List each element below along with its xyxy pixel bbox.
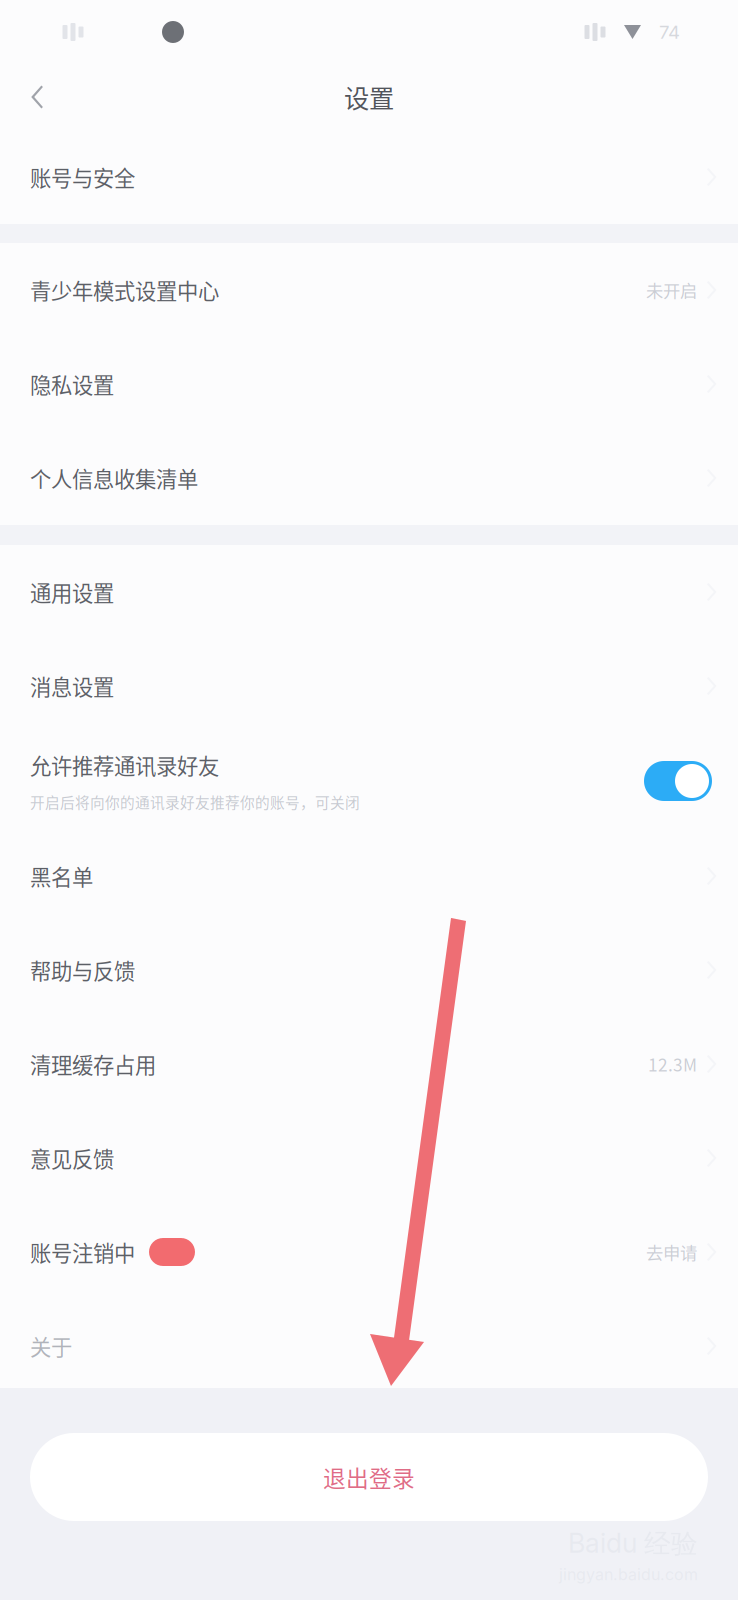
button[interactable]: 退出登录: [30, 1433, 708, 1521]
button[interactable]: Back: [0, 64, 96, 130]
button[interactable]: 青少年模式设置中心: [0, 243, 738, 337]
staticText: 账号注销中: [30, 1237, 135, 1267]
staticText: 个人信息收集清单: [30, 463, 198, 493]
button[interactable]: 帮助与反馈: [0, 923, 738, 1017]
staticText: 74: [659, 21, 680, 43]
button[interactable]: 隐私设置: [0, 337, 738, 431]
staticText: 隐私设置: [30, 369, 114, 399]
staticText: 允许推荐通讯录好友: [30, 749, 219, 780]
button[interactable]: 允许推荐通讯录好友: [0, 733, 738, 829]
button[interactable]: 个人信息收集清单: [0, 431, 738, 525]
button[interactable]: 关于: [0, 1299, 738, 1393]
staticText: 青少年模式设置中心: [30, 275, 219, 305]
staticText: 意见反馈: [30, 1143, 114, 1173]
staticText: 去申请: [646, 1239, 697, 1265]
staticText: 12.3M: [648, 1051, 697, 1077]
staticText: 帮助与反馈: [30, 955, 135, 985]
staticText: 设置: [344, 79, 394, 115]
staticText: 清理缓存占用: [30, 1049, 156, 1079]
button[interactable]: 意见反馈: [0, 1111, 738, 1205]
staticText: 开启后将向你的通讯录好友推荐你的账号，可关闭: [30, 791, 360, 812]
button[interactable]: 账号与安全: [0, 130, 738, 224]
staticText: 黑名单: [30, 861, 93, 891]
staticText: 未开启: [646, 277, 697, 303]
button[interactable]: 清理缓存占用: [0, 1017, 738, 1111]
staticText: 消息设置: [30, 671, 114, 701]
button[interactable]: 账号注销中: [0, 1205, 738, 1299]
staticText: 通用设置: [30, 577, 114, 607]
button[interactable]: 黑名单: [0, 829, 738, 923]
staticText: 账号与安全: [30, 162, 135, 192]
staticText: 退出登录: [323, 1461, 415, 1493]
staticText: 关于: [30, 1331, 72, 1361]
button[interactable]: 通用设置: [0, 545, 738, 639]
staticText: Baidu 经验: [568, 1527, 698, 1561]
button[interactable]: 消息设置: [0, 639, 738, 733]
